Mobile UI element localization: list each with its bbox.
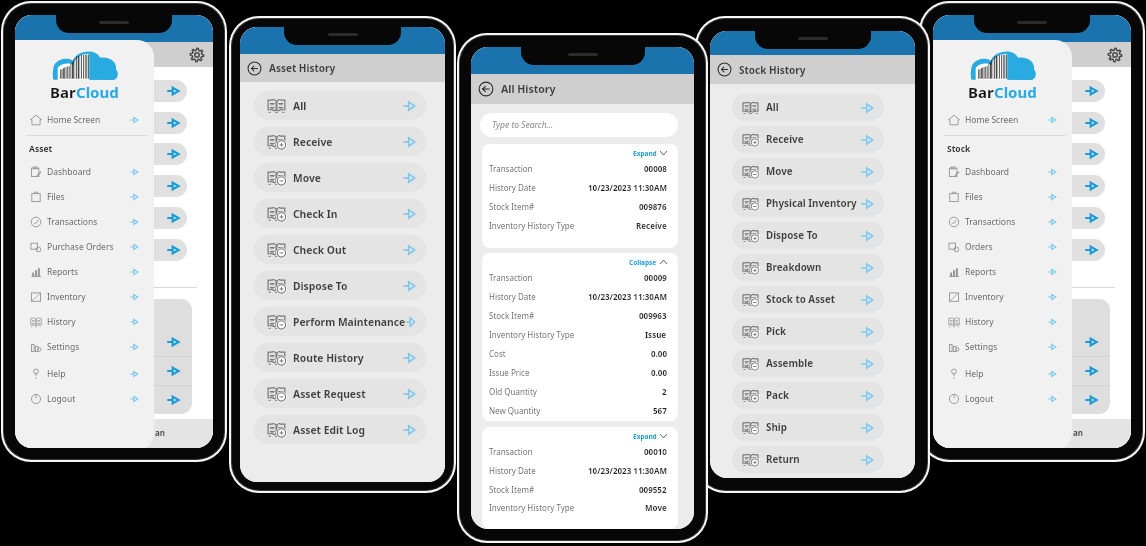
button[interactable]: Home Screen bbox=[15, 107, 154, 132]
button[interactable]: Perform Maintenance bbox=[254, 307, 426, 336]
staticText: 0.00 bbox=[651, 367, 667, 378]
button[interactable]: History bbox=[15, 309, 154, 334]
button[interactable]: Settings bbox=[15, 334, 154, 359]
button[interactable]: Expand bbox=[489, 147, 667, 159]
button[interactable]: Type to Search... bbox=[480, 113, 678, 137]
staticText: Transactions bbox=[965, 216, 1016, 228]
staticText: Asset Edit Log bbox=[293, 423, 365, 437]
staticText: Cloud bbox=[76, 82, 119, 102]
button[interactable]: Orders bbox=[933, 234, 1072, 259]
staticText: Receive bbox=[766, 133, 804, 146]
staticText: Return bbox=[766, 453, 800, 466]
button[interactable]: Receive bbox=[254, 127, 426, 156]
staticText: Move bbox=[645, 502, 667, 513]
button[interactable]: Reports bbox=[933, 259, 1072, 284]
button[interactable]: Receive bbox=[732, 126, 884, 153]
button[interactable]: Dispose To bbox=[732, 222, 884, 249]
button[interactable]: Ship bbox=[732, 414, 884, 441]
staticText: Check In bbox=[293, 207, 338, 221]
button[interactable]: Home Screen bbox=[933, 107, 1072, 132]
button[interactable]: Help bbox=[15, 361, 154, 386]
staticText: Stock Item# bbox=[489, 310, 535, 321]
staticText: Dispose To bbox=[766, 229, 818, 242]
staticText: Help bbox=[965, 368, 984, 380]
button[interactable]: Physical Inventory bbox=[732, 190, 884, 217]
button[interactable]: Inventory bbox=[933, 284, 1072, 309]
button[interactable]: All bbox=[254, 91, 426, 120]
button[interactable]: Settings bbox=[190, 48, 204, 62]
button[interactable]: Transactions bbox=[15, 209, 154, 234]
button[interactable]: All bbox=[732, 94, 884, 121]
button[interactable]: Dashboard bbox=[933, 159, 1072, 184]
button[interactable]: Asset Edit Log bbox=[254, 415, 426, 444]
button[interactable]: Pack bbox=[732, 382, 884, 409]
staticText: an bbox=[1073, 427, 1083, 438]
staticText: History bbox=[47, 316, 76, 328]
staticText: Issue Price bbox=[489, 367, 530, 378]
button[interactable]: History bbox=[933, 309, 1072, 334]
staticText: 00010 bbox=[644, 446, 667, 457]
staticText: All History bbox=[501, 82, 556, 96]
button[interactable]: Back bbox=[247, 61, 262, 76]
button[interactable]: Transactions bbox=[933, 209, 1072, 234]
button[interactable]: Logout bbox=[15, 386, 154, 411]
staticText: Ship bbox=[766, 421, 787, 434]
staticText: an bbox=[155, 427, 165, 438]
staticText: Transactions bbox=[47, 216, 98, 228]
button[interactable]: Settings bbox=[933, 334, 1072, 359]
button[interactable]: Collapse bbox=[489, 256, 667, 268]
staticText: Stock bbox=[947, 143, 971, 155]
staticText: Files bbox=[965, 191, 983, 203]
button[interactable]: Check Out bbox=[254, 235, 426, 264]
button[interactable]: Help bbox=[933, 361, 1072, 386]
button[interactable]: Dispose To bbox=[254, 271, 426, 300]
button[interactable]: Move bbox=[254, 163, 426, 192]
staticText: Dispose To bbox=[293, 279, 348, 293]
staticText: Purchase Orders bbox=[47, 241, 114, 253]
staticText: Move bbox=[293, 171, 321, 185]
button[interactable]: Expand bbox=[489, 430, 667, 442]
staticText: Pack bbox=[766, 389, 790, 402]
button[interactable]: Return bbox=[732, 446, 884, 473]
staticText: Logout bbox=[47, 393, 76, 405]
staticText: Files bbox=[47, 191, 65, 203]
button[interactable]: Asset Request bbox=[254, 379, 426, 408]
button[interactable]: Move bbox=[732, 158, 884, 185]
staticText: Bar bbox=[968, 82, 994, 102]
staticText: Route History bbox=[293, 351, 364, 365]
button[interactable]: Back bbox=[717, 62, 732, 77]
staticText: Home Screen bbox=[965, 114, 1019, 126]
staticText: History Date bbox=[489, 182, 536, 193]
staticText: Cloud bbox=[994, 82, 1037, 102]
staticText: 00008 bbox=[644, 163, 667, 174]
staticText: Settings bbox=[47, 341, 80, 353]
button[interactable]: Files bbox=[15, 184, 154, 209]
button[interactable]: Inventory bbox=[15, 284, 154, 309]
staticText: Expand bbox=[633, 432, 657, 441]
staticText: Expand bbox=[633, 149, 657, 158]
staticText: Receive bbox=[293, 135, 333, 149]
button[interactable]: Reports bbox=[15, 259, 154, 284]
button[interactable]: Back bbox=[478, 81, 494, 97]
staticText: Breakdown bbox=[766, 261, 822, 274]
button[interactable]: Assemble bbox=[732, 350, 884, 377]
button[interactable]: Route History bbox=[254, 343, 426, 372]
staticText: History Date bbox=[489, 291, 536, 302]
button[interactable]: Files bbox=[933, 184, 1072, 209]
button[interactable]: Dashboard bbox=[15, 159, 154, 184]
button[interactable]: Breakdown bbox=[732, 254, 884, 281]
staticText: Dashboard bbox=[965, 166, 1010, 178]
staticText: Inventory bbox=[47, 291, 86, 303]
staticText: Reports bbox=[965, 266, 997, 278]
staticText: Dashboard bbox=[47, 166, 92, 178]
button[interactable]: Check In bbox=[254, 199, 426, 228]
button[interactable]: Pick bbox=[732, 318, 884, 345]
staticText: Cost bbox=[489, 348, 506, 359]
button[interactable]: Purchase Orders bbox=[15, 234, 154, 259]
staticText: Stock Item# bbox=[489, 484, 535, 495]
button[interactable]: Settings bbox=[1108, 48, 1122, 62]
staticText: Transaction bbox=[489, 446, 533, 457]
button[interactable]: Logout bbox=[933, 386, 1072, 411]
staticText: Stock Item# bbox=[489, 201, 535, 212]
button[interactable]: Stock to Asset bbox=[732, 286, 884, 313]
